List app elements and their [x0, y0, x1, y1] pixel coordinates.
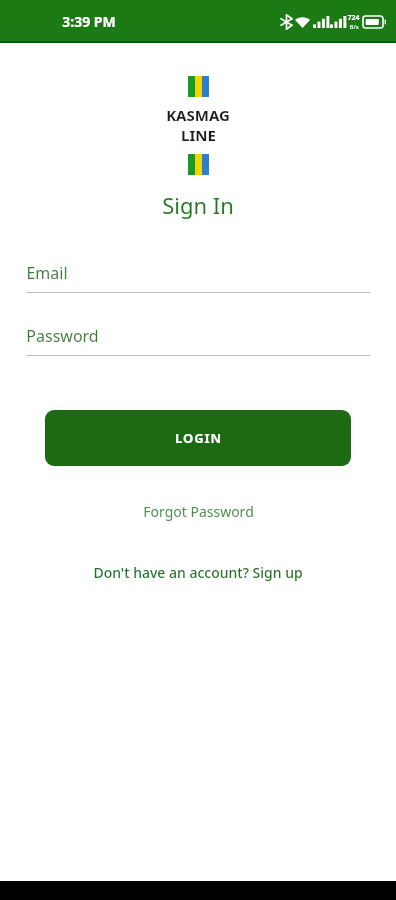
button[interactable]: Password — [26, 317, 370, 356]
staticText: 724 — [347, 13, 360, 23]
staticText: Email — [26, 262, 68, 284]
staticText: KASMAG — [166, 105, 230, 125]
staticText: LOGIN — [175, 429, 222, 447]
staticText: Forgot Password — [143, 502, 254, 521]
button[interactable]: LOGIN — [45, 410, 351, 466]
staticText: Password — [26, 325, 99, 347]
staticText: 3:39 PM — [62, 12, 116, 31]
button[interactable]: Email — [26, 254, 370, 293]
staticText: Don't have an account? Sign up — [93, 563, 303, 582]
staticText: B/s — [349, 23, 359, 31]
staticText: Sign In — [162, 190, 234, 220]
button[interactable]: Don't have an account? Sign up — [93, 563, 303, 582]
button[interactable]: Forgot Password — [143, 502, 254, 521]
staticText: LINE — [181, 125, 216, 145]
